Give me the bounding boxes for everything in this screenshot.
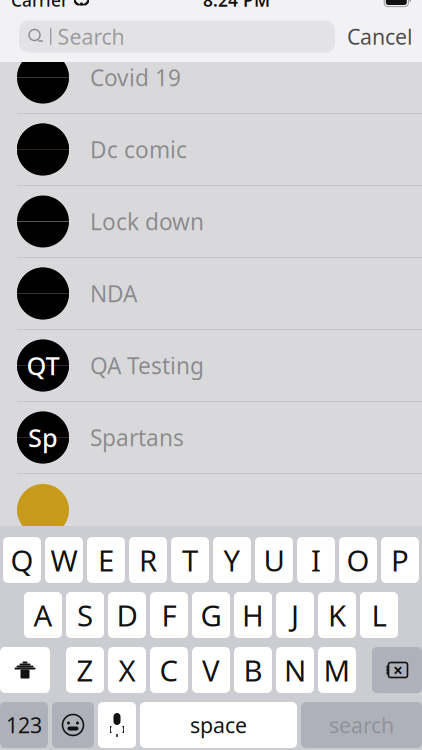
button[interactable]: H bbox=[234, 592, 272, 638]
staticText: Z bbox=[76, 650, 93, 689]
staticText: K bbox=[328, 595, 346, 634]
staticText: P bbox=[391, 540, 409, 579]
button[interactable]: Sp bbox=[0, 402, 422, 474]
staticText: Y bbox=[223, 540, 240, 579]
button[interactable]: Delete bbox=[372, 647, 422, 693]
staticText: V bbox=[202, 650, 220, 689]
button[interactable]: J bbox=[276, 592, 314, 638]
button[interactable]: space bbox=[140, 702, 297, 748]
button[interactable]: search bbox=[301, 702, 422, 748]
button[interactable]: B bbox=[234, 647, 272, 693]
button[interactable]: QT bbox=[0, 330, 422, 402]
staticText: W bbox=[50, 540, 77, 579]
staticText: F bbox=[161, 595, 176, 634]
staticText: H bbox=[242, 595, 264, 634]
staticText: B bbox=[243, 650, 262, 689]
button[interactable]: I bbox=[297, 537, 335, 583]
button[interactable]: T bbox=[171, 537, 209, 583]
button[interactable]: O bbox=[339, 537, 377, 583]
staticText: N bbox=[284, 650, 306, 689]
staticText: I bbox=[311, 540, 321, 579]
staticText: C bbox=[159, 650, 178, 689]
button[interactable]: 123 bbox=[0, 702, 48, 748]
button[interactable]: N bbox=[276, 647, 314, 693]
staticText: X bbox=[118, 650, 135, 689]
button[interactable]: E bbox=[87, 537, 125, 583]
staticText: × bbox=[393, 658, 403, 681]
staticText: S bbox=[77, 595, 93, 634]
staticText: 123 bbox=[6, 711, 42, 739]
staticText: Cancel bbox=[347, 22, 413, 51]
staticText: Covid 19 bbox=[90, 62, 181, 92]
staticText: R bbox=[139, 540, 157, 579]
button[interactable]: D bbox=[108, 592, 146, 638]
button[interactable]: W bbox=[45, 537, 83, 583]
staticText: M bbox=[323, 650, 350, 689]
button[interactable]: Cancel bbox=[347, 20, 413, 52]
staticText: O bbox=[346, 540, 369, 579]
button[interactable]: G bbox=[192, 592, 230, 638]
button[interactable]: M bbox=[318, 647, 356, 693]
staticText: D bbox=[116, 595, 137, 634]
button[interactable]: Lock down bbox=[0, 186, 422, 258]
button[interactable]: Z bbox=[66, 647, 104, 693]
staticText: Carrier bbox=[11, 0, 68, 11]
button[interactable]: X bbox=[108, 647, 146, 693]
staticText: QA Testing bbox=[90, 350, 204, 380]
button[interactable]: Q bbox=[3, 537, 41, 583]
staticText: 8:24 PM bbox=[203, 0, 270, 11]
staticText: space bbox=[190, 711, 247, 739]
button[interactable]: L bbox=[360, 592, 398, 638]
staticText: G bbox=[200, 595, 221, 634]
staticText: E bbox=[98, 540, 114, 579]
button[interactable]: K bbox=[318, 592, 356, 638]
button[interactable]: P bbox=[381, 537, 419, 583]
button[interactable]: S bbox=[66, 592, 104, 638]
staticText: NDA bbox=[90, 278, 137, 308]
button[interactable]: Y bbox=[213, 537, 251, 583]
button[interactable]: Shift bbox=[0, 647, 50, 693]
staticText: Dc comic bbox=[90, 134, 187, 164]
staticText: search bbox=[329, 711, 394, 739]
button[interactable]: Search bbox=[19, 20, 335, 52]
staticText: Q bbox=[10, 540, 33, 579]
staticText: J bbox=[291, 595, 299, 634]
button[interactable]: Covid 19 bbox=[0, 42, 422, 114]
button[interactable]: A bbox=[24, 592, 62, 638]
button[interactable]: Dc comic bbox=[0, 114, 422, 186]
staticText: Search bbox=[57, 22, 124, 51]
staticText: T bbox=[182, 540, 198, 579]
staticText: U bbox=[263, 540, 284, 579]
staticText: Spartans bbox=[90, 422, 184, 452]
button[interactable]: Emoji bbox=[52, 702, 94, 748]
button[interactable]: C bbox=[150, 647, 188, 693]
staticText: A bbox=[33, 595, 52, 634]
button[interactable]: F bbox=[150, 592, 188, 638]
button[interactable]: NDA bbox=[0, 258, 422, 330]
staticText: Sp bbox=[28, 421, 58, 454]
button[interactable]: R bbox=[129, 537, 167, 583]
staticText: L bbox=[371, 595, 386, 634]
button[interactable]: V bbox=[192, 647, 230, 693]
staticText: QT bbox=[26, 349, 59, 382]
staticText: Lock down bbox=[90, 206, 204, 236]
button[interactable]: Dictation bbox=[98, 702, 136, 748]
button[interactable]: U bbox=[255, 537, 293, 583]
